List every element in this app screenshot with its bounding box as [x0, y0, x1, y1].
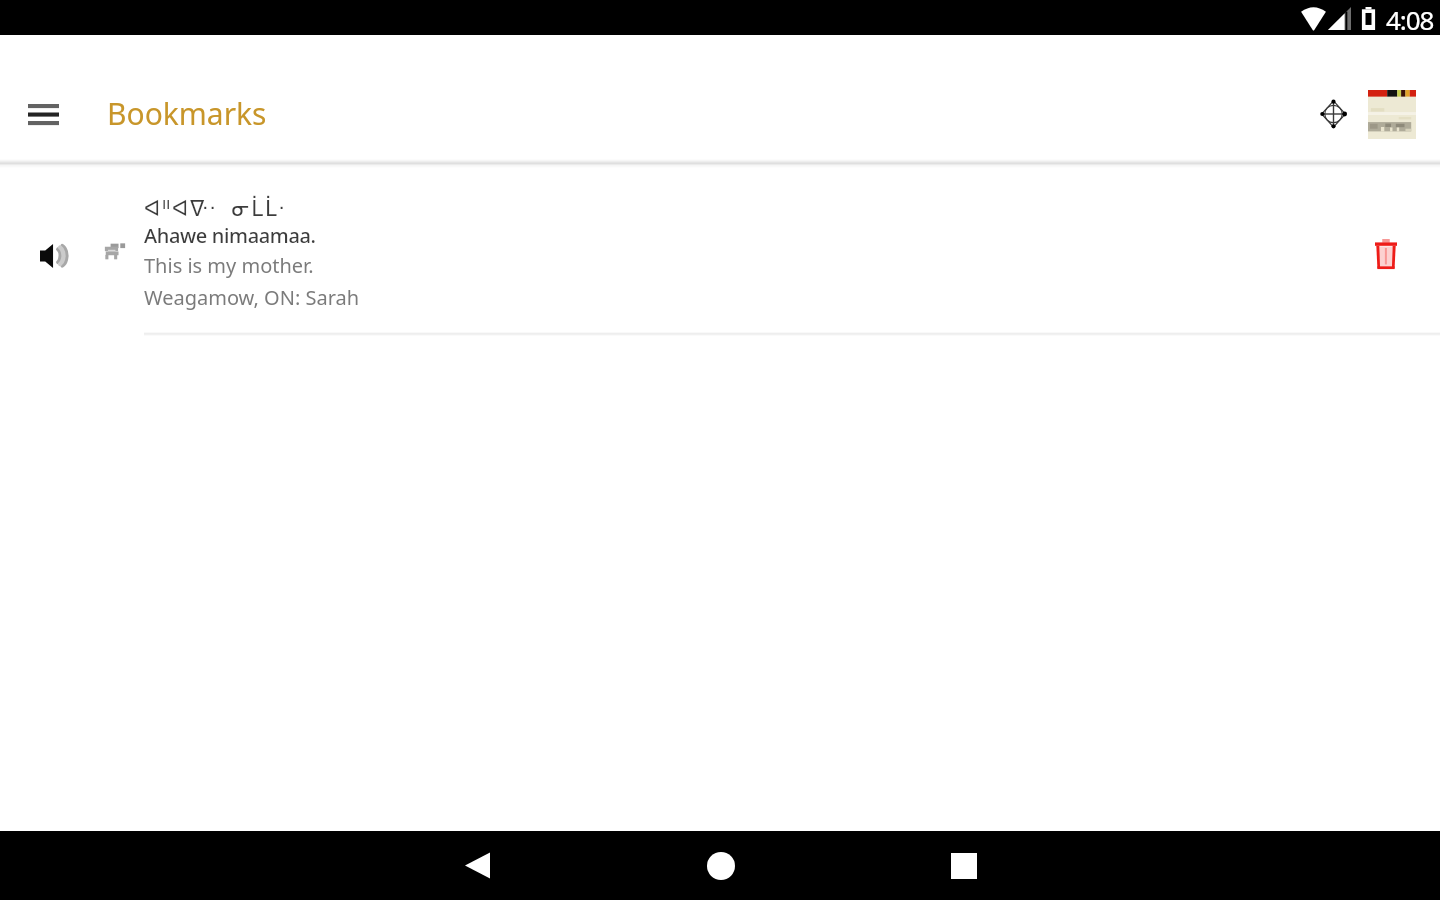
button[interactable]: Recent apps	[842, 831, 1085, 900]
staticText: Bookmarks	[107, 93, 267, 134]
staticText: This is my mother.	[144, 252, 314, 279]
button[interactable]: Open dictionary	[1364, 86, 1420, 142]
staticText: Ahawe nimaamaa.	[144, 222, 316, 249]
button[interactable]: Delete bookmark	[1358, 226, 1414, 282]
staticText: 4:08	[1386, 2, 1434, 37]
button[interactable]: Back	[356, 831, 599, 900]
button[interactable]: Play audio	[0, 163, 1440, 338]
button[interactable]: Play audio	[27, 229, 81, 283]
button[interactable]: Move	[1305, 86, 1361, 142]
button[interactable]: Home	[599, 831, 842, 900]
staticText: Weagamow, ON: Sarah	[144, 284, 360, 311]
button[interactable]: Open navigation drawer	[6, 78, 80, 150]
staticText: ᐊᐦᐊᐍᐧ ᓂᒫᒫᐧ	[144, 194, 286, 223]
